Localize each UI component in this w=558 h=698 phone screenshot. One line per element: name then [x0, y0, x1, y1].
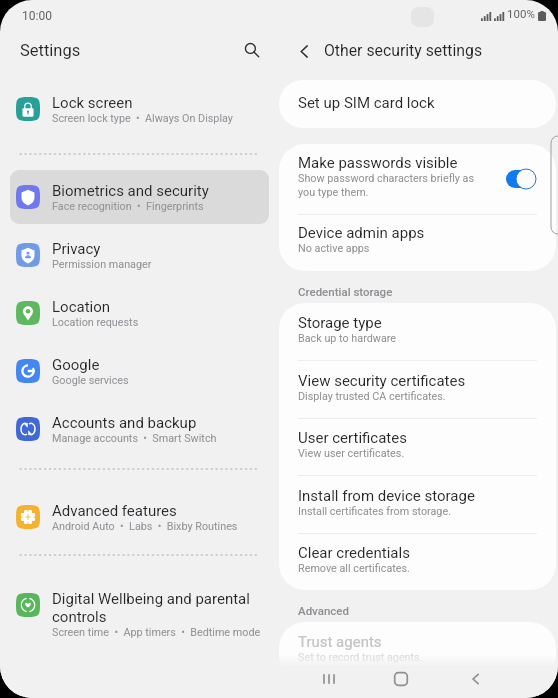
- staticText: Screen time • App timers • Bedtime mode: [52, 626, 261, 639]
- staticText: Google services: [52, 374, 129, 387]
- button[interactable]: [279, 359, 556, 416]
- staticText: Location: [52, 298, 111, 316]
- button[interactable]: [279, 80, 556, 128]
- staticText: Back up to hardware: [298, 332, 397, 345]
- button[interactable]: Home: [380, 658, 422, 698]
- staticText: Install from device storage: [298, 487, 475, 505]
- staticText: User certificates: [298, 429, 407, 447]
- staticText: Permission manager: [52, 258, 152, 271]
- button[interactable]: [279, 303, 556, 358]
- staticText: Settings: [20, 41, 81, 60]
- staticText: Display trusted CA certificates.: [298, 390, 446, 403]
- staticText: Other security settings: [324, 41, 483, 60]
- button[interactable]: [10, 492, 269, 542]
- staticText: Accounts and backup: [52, 414, 197, 432]
- button[interactable]: [279, 144, 556, 198]
- button[interactable]: Recents: [308, 658, 350, 698]
- button[interactable]: Back: [289, 36, 319, 66]
- staticText: Privacy: [52, 240, 101, 258]
- button[interactable]: [10, 172, 269, 222]
- button[interactable]: [279, 622, 556, 677]
- staticText: Manage accounts • Smart Switch: [52, 432, 217, 445]
- staticText: Install certificates from storage.: [298, 505, 452, 518]
- staticText: Show password characters briefly as you …: [298, 172, 475, 199]
- staticText: Clear credentials: [298, 544, 410, 562]
- staticText: Android Auto • Labs • Bixby Routines: [52, 520, 238, 533]
- button[interactable]: [10, 580, 269, 630]
- button[interactable]: [10, 404, 269, 454]
- staticText: Face recognition • Fingerprints: [52, 200, 204, 213]
- staticText: Screen lock type • Always On Display: [52, 112, 233, 125]
- button[interactable]: Search: [237, 35, 267, 65]
- button[interactable]: [279, 416, 556, 473]
- staticText: 100%: [507, 7, 535, 20]
- button[interactable]: [10, 346, 269, 396]
- staticText: Credential storage: [298, 285, 393, 298]
- staticText: Location requests: [52, 316, 139, 329]
- staticText: Set to record trust agents.: [298, 651, 423, 664]
- staticText: Google: [52, 356, 100, 374]
- staticText: Device admin apps: [298, 224, 425, 242]
- button[interactable]: [10, 230, 269, 280]
- staticText: 10:00: [22, 9, 52, 23]
- button[interactable]: [279, 531, 556, 588]
- staticText: Advanced features: [52, 502, 177, 520]
- staticText: Lock screen: [52, 94, 133, 112]
- staticText: No active apps: [298, 242, 370, 255]
- button[interactable]: [279, 474, 556, 531]
- staticText: Biometrics and security: [52, 182, 209, 200]
- button[interactable]: Make passwords visible: [506, 168, 538, 190]
- staticText: View security certificates: [298, 372, 466, 390]
- staticText: View user certificates.: [298, 447, 405, 460]
- staticText: Storage type: [298, 314, 382, 332]
- staticText: Remove all certificates.: [298, 562, 410, 575]
- button[interactable]: [10, 288, 269, 338]
- staticText: Trust agents: [298, 633, 382, 651]
- button[interactable]: [279, 211, 556, 268]
- staticText: Make passwords visible: [298, 154, 458, 172]
- staticText: Digital Wellbeing and parental controls: [52, 590, 250, 626]
- staticText: Advanced: [298, 604, 349, 617]
- button[interactable]: [10, 84, 269, 134]
- staticText: Set up SIM card lock: [298, 94, 435, 112]
- button[interactable]: Back: [455, 658, 497, 698]
